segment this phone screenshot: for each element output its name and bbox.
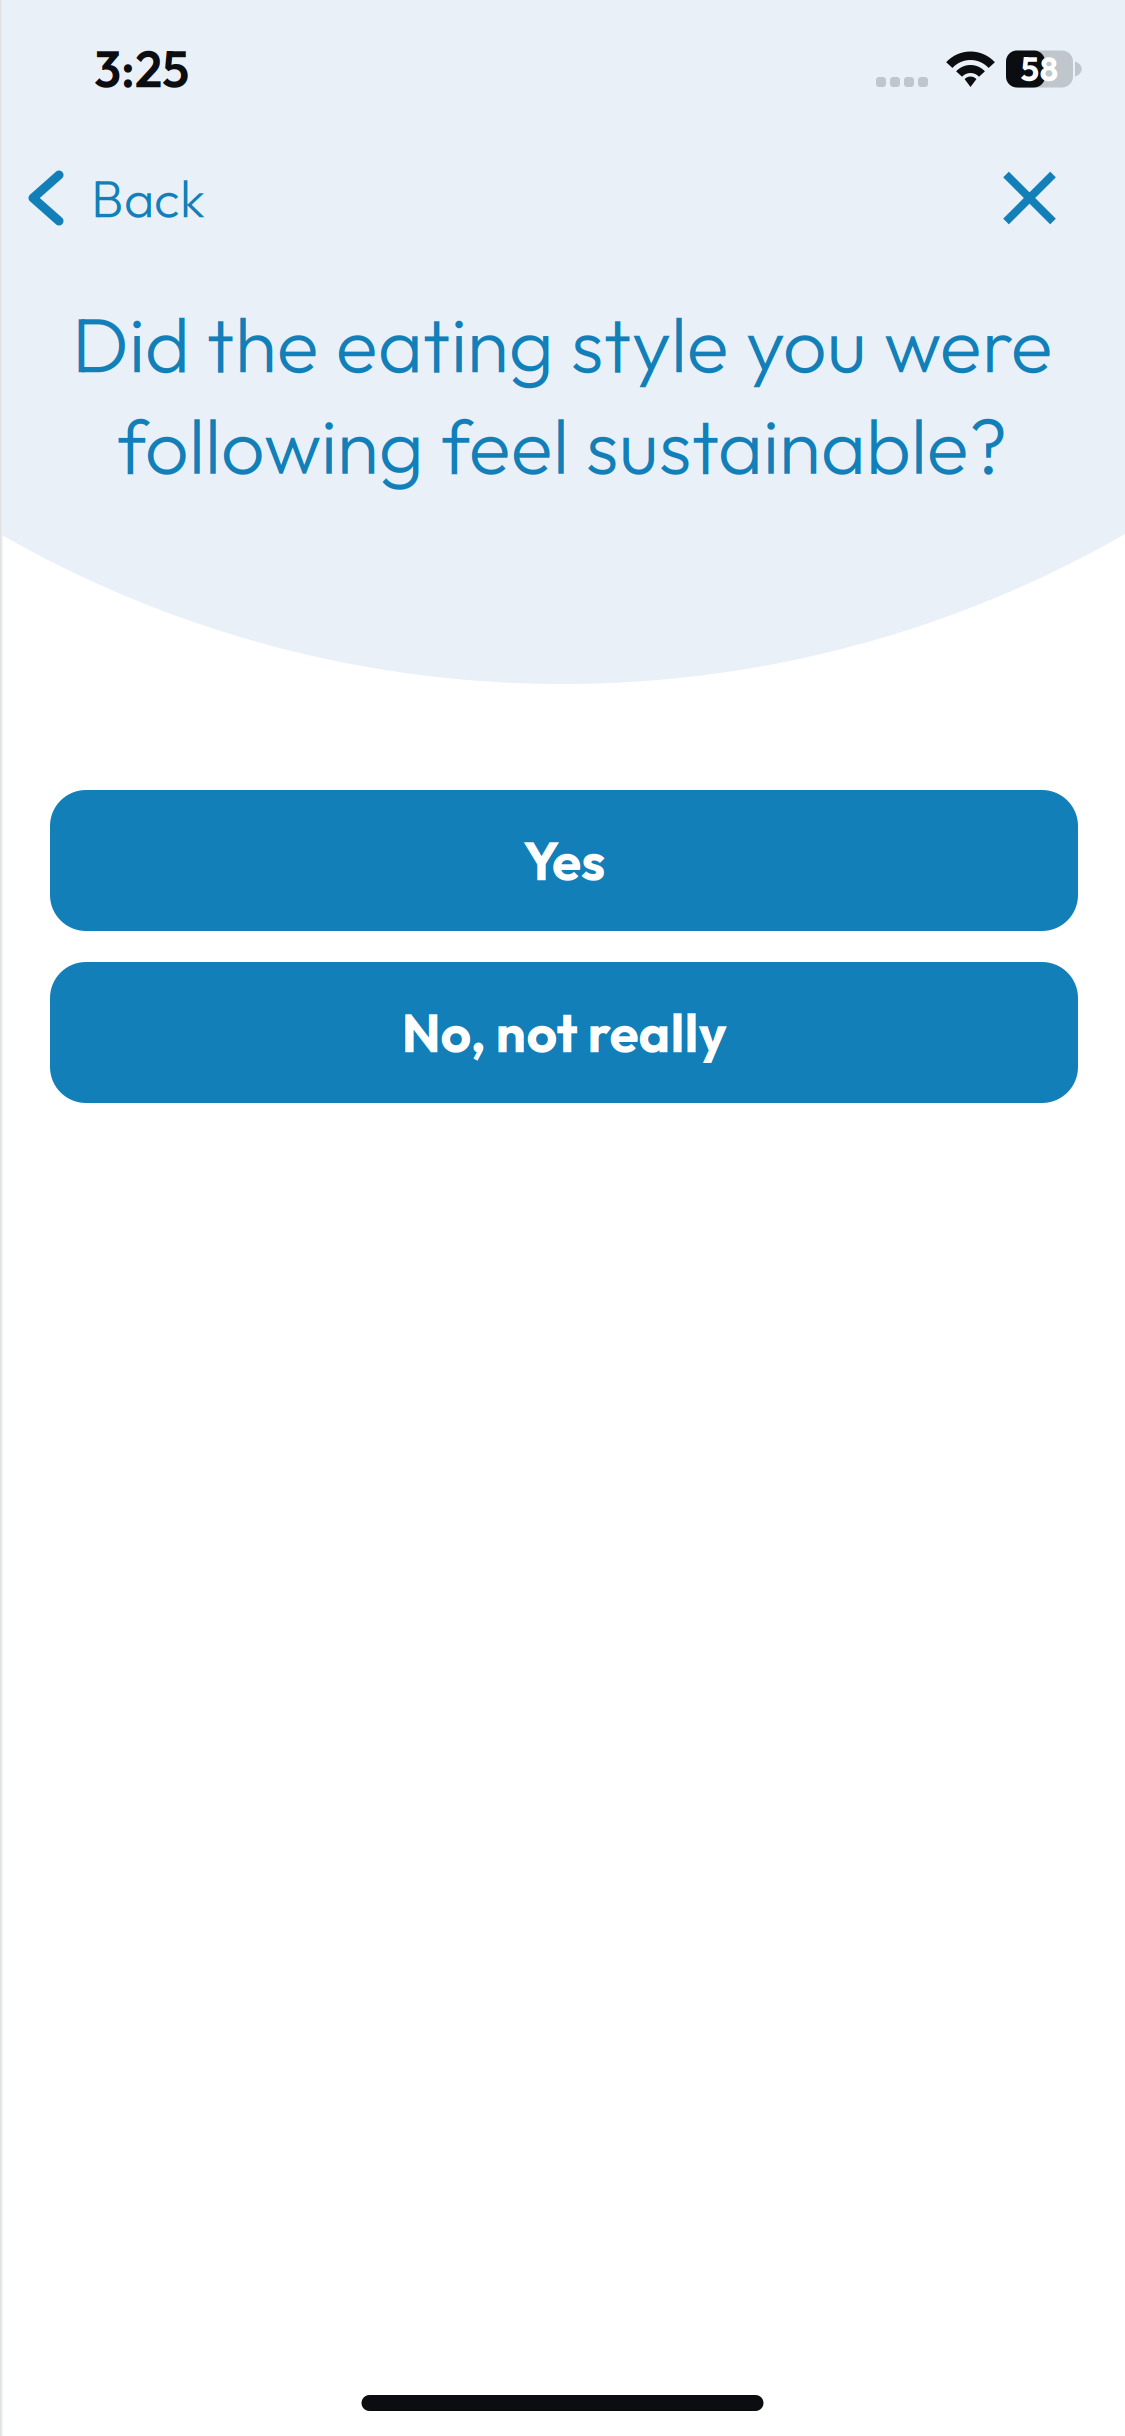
button[interactable]: Close bbox=[978, 146, 1125, 249]
staticText: Did the eating style you were following … bbox=[71, 295, 1052, 494]
staticText: Yes bbox=[523, 827, 605, 894]
staticText: Back bbox=[91, 165, 205, 231]
staticText: No, not really bbox=[401, 999, 726, 1066]
staticText: 58 bbox=[1020, 48, 1058, 90]
button[interactable]: No, not really bbox=[50, 962, 1078, 1103]
staticText: 3:25 bbox=[94, 38, 189, 100]
button[interactable]: Yes bbox=[50, 790, 1078, 931]
button[interactable]: Back bbox=[0, 143, 231, 253]
